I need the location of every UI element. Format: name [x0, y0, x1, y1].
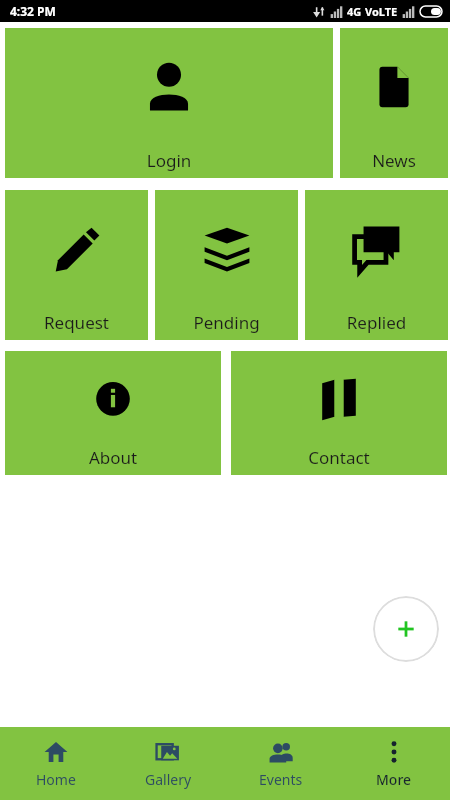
button[interactable]: Gallery [112, 727, 224, 800]
button[interactable]: News [340, 28, 448, 178]
button[interactable]: Replied [305, 190, 448, 340]
button[interactable]: Contact [231, 351, 447, 475]
button[interactable]: Home [0, 727, 112, 800]
staticText: Contact [231, 446, 447, 469]
button[interactable]: Add [373, 596, 439, 662]
button[interactable]: Request [5, 190, 148, 340]
button[interactable]: About [5, 351, 221, 475]
staticText: Request [5, 311, 148, 334]
staticText: 4:32 PM [10, 3, 56, 19]
staticText: Login [5, 149, 333, 172]
staticText: Replied [305, 311, 448, 334]
staticText: 4G [347, 4, 362, 19]
staticText: Gallery [145, 770, 192, 789]
button[interactable]: Login [5, 28, 333, 178]
staticText: Home [36, 770, 76, 789]
button[interactable]: Events [224, 727, 337, 800]
staticText: Events [259, 770, 303, 789]
staticText: News [340, 149, 448, 172]
staticText: About [5, 446, 221, 469]
staticText: More [376, 770, 412, 789]
staticText: VoLTE [365, 4, 398, 19]
button[interactable]: Pending [155, 190, 298, 340]
button[interactable]: More [337, 727, 450, 800]
staticText: Pending [155, 311, 298, 334]
